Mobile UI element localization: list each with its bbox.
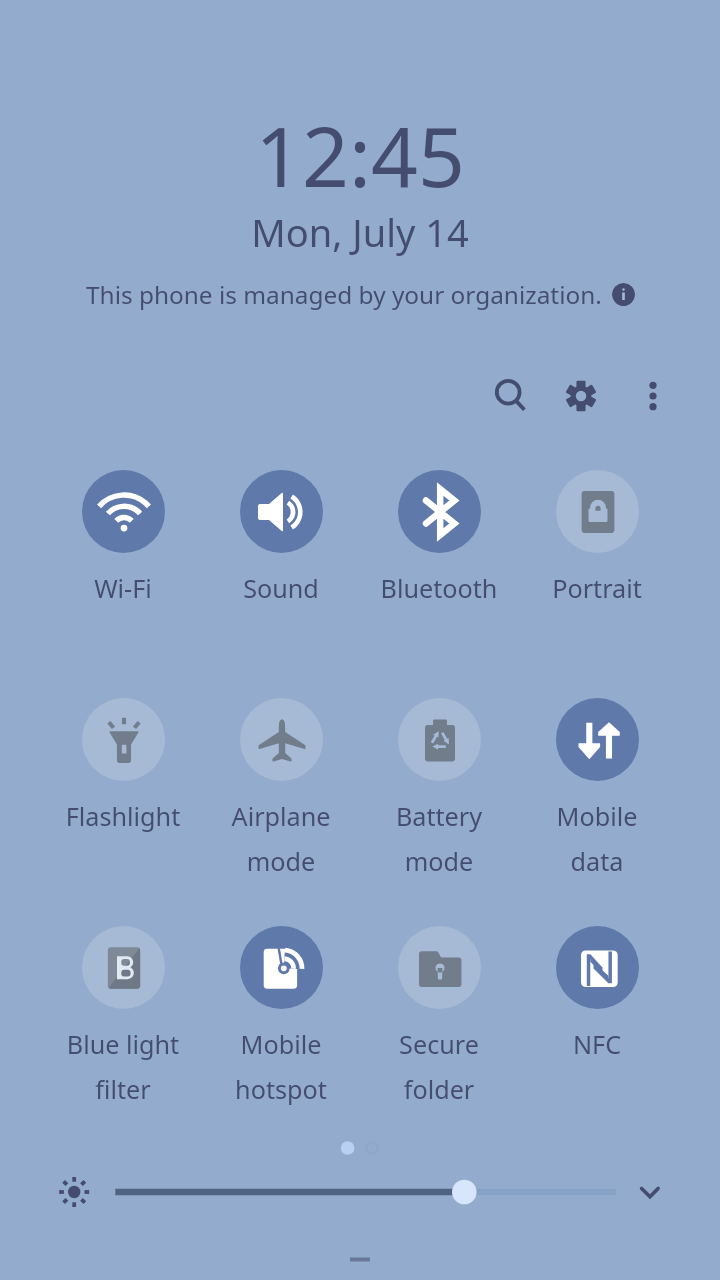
button[interactable]: Wi-Fi <box>44 470 202 587</box>
button[interactable]: Settings <box>556 371 606 421</box>
staticText: Wi-Fi <box>44 571 202 605</box>
button[interactable]: Mobile data <box>518 698 676 861</box>
button[interactable]: More options <box>628 371 678 421</box>
button[interactable]: NFC <box>518 926 676 1043</box>
button[interactable]: Close panel <box>315 1246 405 1274</box>
button[interactable]: Blue light filter <box>44 926 202 1089</box>
staticText: Mobile hotspot <box>202 1027 360 1107</box>
button[interactable]: Flashlight <box>44 698 202 815</box>
staticText: Airplane mode <box>202 799 360 879</box>
button[interactable]: Mobile hotspot <box>202 926 360 1089</box>
button[interactable]: Expand quick settings <box>627 1169 673 1215</box>
button[interactable]: Airplane mode <box>202 698 360 861</box>
button[interactable]: Sound <box>202 470 360 587</box>
button[interactable]: Bluetooth <box>360 470 518 587</box>
staticText: Flashlight <box>44 799 202 833</box>
button[interactable]: Search <box>485 370 535 420</box>
staticText: NFC <box>518 1027 676 1061</box>
button[interactable]: Brightness <box>105 1170 625 1214</box>
staticText: Mobile data <box>518 799 676 879</box>
button[interactable]: Battery mode <box>360 698 518 861</box>
button[interactable]: Secure folder <box>360 926 518 1089</box>
button[interactable]: Brightness settings <box>54 1172 94 1212</box>
staticText: This phone is managed by your organizati… <box>86 278 602 311</box>
staticText: Secure folder <box>360 1027 518 1107</box>
staticText: Bluetooth <box>360 571 518 605</box>
button[interactable]: Portrait <box>518 470 676 587</box>
button[interactable]: Info <box>612 283 635 306</box>
staticText: Sound <box>202 571 360 605</box>
button[interactable]: Page 1 <box>335 1135 361 1161</box>
staticText: 12:45 <box>0 99 720 211</box>
staticText: Blue light filter <box>44 1027 202 1107</box>
staticText: Battery mode <box>360 799 518 879</box>
staticText: Mon, July 14 <box>0 206 720 258</box>
staticText: Portrait <box>518 571 676 605</box>
